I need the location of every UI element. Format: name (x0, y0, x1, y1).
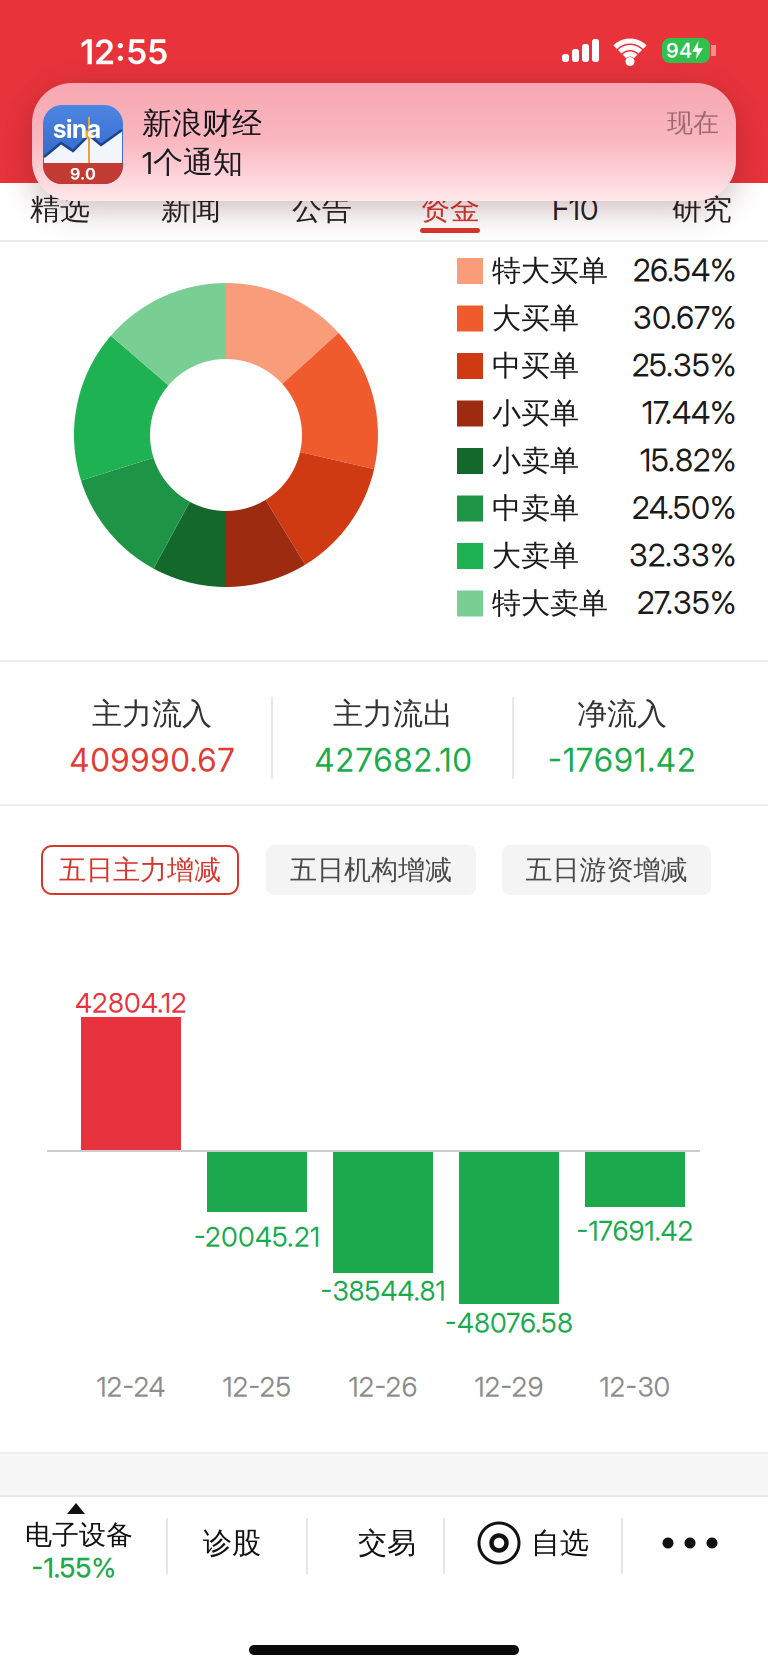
staticText: 94 (666, 39, 692, 62)
staticText: 中卖单 (492, 490, 579, 526)
button[interactable]: 诊股 (172, 1498, 292, 1588)
staticText: 小买单 (492, 395, 579, 431)
staticText: 12-29 (474, 1371, 543, 1403)
staticText: -20045.21 (194, 1221, 320, 1253)
staticText: 小卖单 (492, 443, 579, 479)
staticText: 27.35% (637, 584, 736, 621)
button[interactable]: 资金 (420, 191, 480, 227)
staticText: 中买单 (492, 348, 579, 384)
staticText: 电子设备 (25, 1518, 133, 1552)
button[interactable]: 交易 (327, 1498, 447, 1588)
button[interactable]: 精选 (30, 191, 90, 227)
staticText: 12-30 (599, 1371, 670, 1403)
staticText: sina (53, 114, 101, 144)
button[interactable]: sina (32, 83, 736, 201)
staticText: -38544.81 (320, 1275, 445, 1307)
staticText: 净流入 (577, 696, 667, 732)
staticText: 12:55 (80, 32, 168, 72)
button[interactable]: 五日游资增减 (502, 845, 711, 895)
staticText: 五日机构增减 (290, 853, 452, 887)
button[interactable]: 新闻 (161, 191, 221, 227)
button[interactable]: 公告 (292, 191, 352, 227)
staticText: 五日游资增减 (525, 853, 687, 887)
staticText: -48076.58 (445, 1307, 573, 1339)
staticText: 大卖单 (492, 538, 579, 574)
staticText: 大买单 (492, 300, 579, 336)
staticText: 新闻 (161, 191, 221, 227)
staticText: F10 (552, 191, 598, 227)
staticText: 12-26 (348, 1371, 417, 1403)
staticText: 17.44% (642, 394, 736, 431)
staticText: 特大卖单 (492, 585, 608, 621)
staticText: 409990.67 (69, 741, 235, 779)
staticText: 12-24 (96, 1371, 165, 1403)
staticText: 特大买单 (492, 253, 608, 289)
staticText: 30.67% (633, 299, 736, 336)
staticText: 26.54% (633, 252, 736, 289)
staticText: 427682.10 (314, 741, 472, 779)
staticText: 新浪财经 (142, 105, 262, 142)
staticText: 1个通知 (142, 144, 243, 181)
button[interactable]: 电子设备 (0, 1497, 160, 1607)
staticText: 交易 (358, 1525, 416, 1561)
button[interactable]: 五日主力增减 (41, 845, 239, 895)
staticText: 公告 (292, 191, 352, 227)
staticText: -1.55% (31, 1552, 116, 1584)
staticText: 资金 (420, 191, 480, 227)
staticText: 12-25 (222, 1371, 291, 1403)
staticText: 精选 (30, 191, 90, 227)
button[interactable]: F10 (552, 191, 598, 227)
staticText: 9.0 (70, 165, 96, 183)
staticText: 五日主力增减 (59, 853, 221, 887)
button[interactable]: 更多 (662, 1537, 717, 1548)
staticText: 24.50% (632, 489, 736, 526)
staticText: 现在 (667, 107, 719, 139)
staticText: -17691.42 (576, 1215, 693, 1247)
staticText: -17691.42 (547, 741, 696, 779)
button[interactable]: 自选 (479, 1523, 589, 1563)
staticText: 自选 (531, 1525, 589, 1561)
staticText: 25.35% (632, 347, 736, 384)
staticText: 32.33% (629, 537, 736, 574)
button[interactable]: 研究 (672, 191, 732, 227)
staticText: 主力流入 (92, 696, 212, 732)
staticText: 42804.12 (75, 987, 187, 1019)
staticText: 主力流出 (333, 696, 453, 732)
staticText: 15.82% (640, 442, 736, 479)
staticText: 研究 (672, 191, 732, 227)
button[interactable]: 五日机构增减 (266, 845, 476, 895)
staticText: 诊股 (203, 1525, 261, 1561)
